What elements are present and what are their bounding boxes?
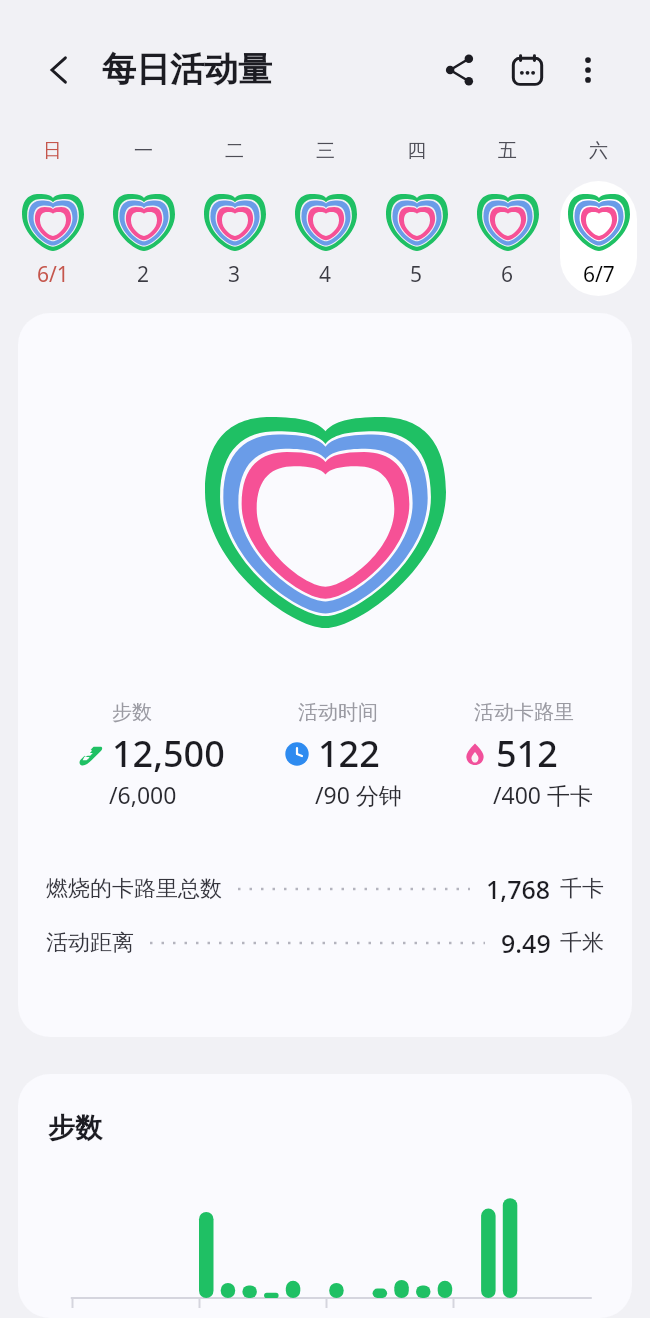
staticText: 千卡 [560,875,604,903]
staticText: 燃烧的卡路里总数 [46,875,222,903]
staticText: 活动距离 [46,929,134,957]
staticText: 千米 [560,929,604,957]
staticText: 一 [134,139,153,163]
staticText: 每日活动量 [102,48,272,91]
staticText: 四 [407,139,426,163]
staticText: 五 [498,139,517,163]
button[interactable]: Back [36,47,82,93]
button[interactable]: 6 [469,181,546,296]
button[interactable]: 6/7 [560,181,637,296]
button[interactable]: 5 [378,181,455,296]
staticText: 122 [318,729,380,778]
staticText: /90 分钟 [315,779,402,810]
staticText: 9.49 [501,926,551,960]
staticText: 5 [410,260,423,289]
staticText: 步数 [48,1111,102,1145]
button[interactable]: 3 [196,181,273,296]
staticText: 12,500 [112,729,225,778]
staticText: 日 [43,139,62,163]
button[interactable]: Calendar [501,44,553,96]
staticText: 步数 [112,700,152,725]
staticText: 六 [589,139,608,163]
button[interactable]: More options [562,44,614,96]
staticText: 6/7 [583,260,615,289]
button[interactable]: 2 [105,181,182,296]
staticText: 6/1 [37,260,69,289]
staticText: 2 [137,260,150,289]
staticText: /6,000 [109,779,177,810]
staticText: 1,768 [486,872,551,906]
button[interactable]: Share [434,44,486,96]
staticText: 活动时间 [298,700,378,725]
staticText: 3 [228,260,241,289]
staticText: 活动卡路里 [474,700,574,725]
staticText: /400 千卡 [493,779,594,810]
staticText: 二 [225,139,244,163]
staticText: 512 [496,729,558,778]
staticText: 三 [316,139,335,163]
staticText: 6 [501,260,514,289]
button[interactable]: 4 [287,181,364,296]
button[interactable]: 6/1 [14,181,91,296]
staticText: 4 [319,260,332,289]
